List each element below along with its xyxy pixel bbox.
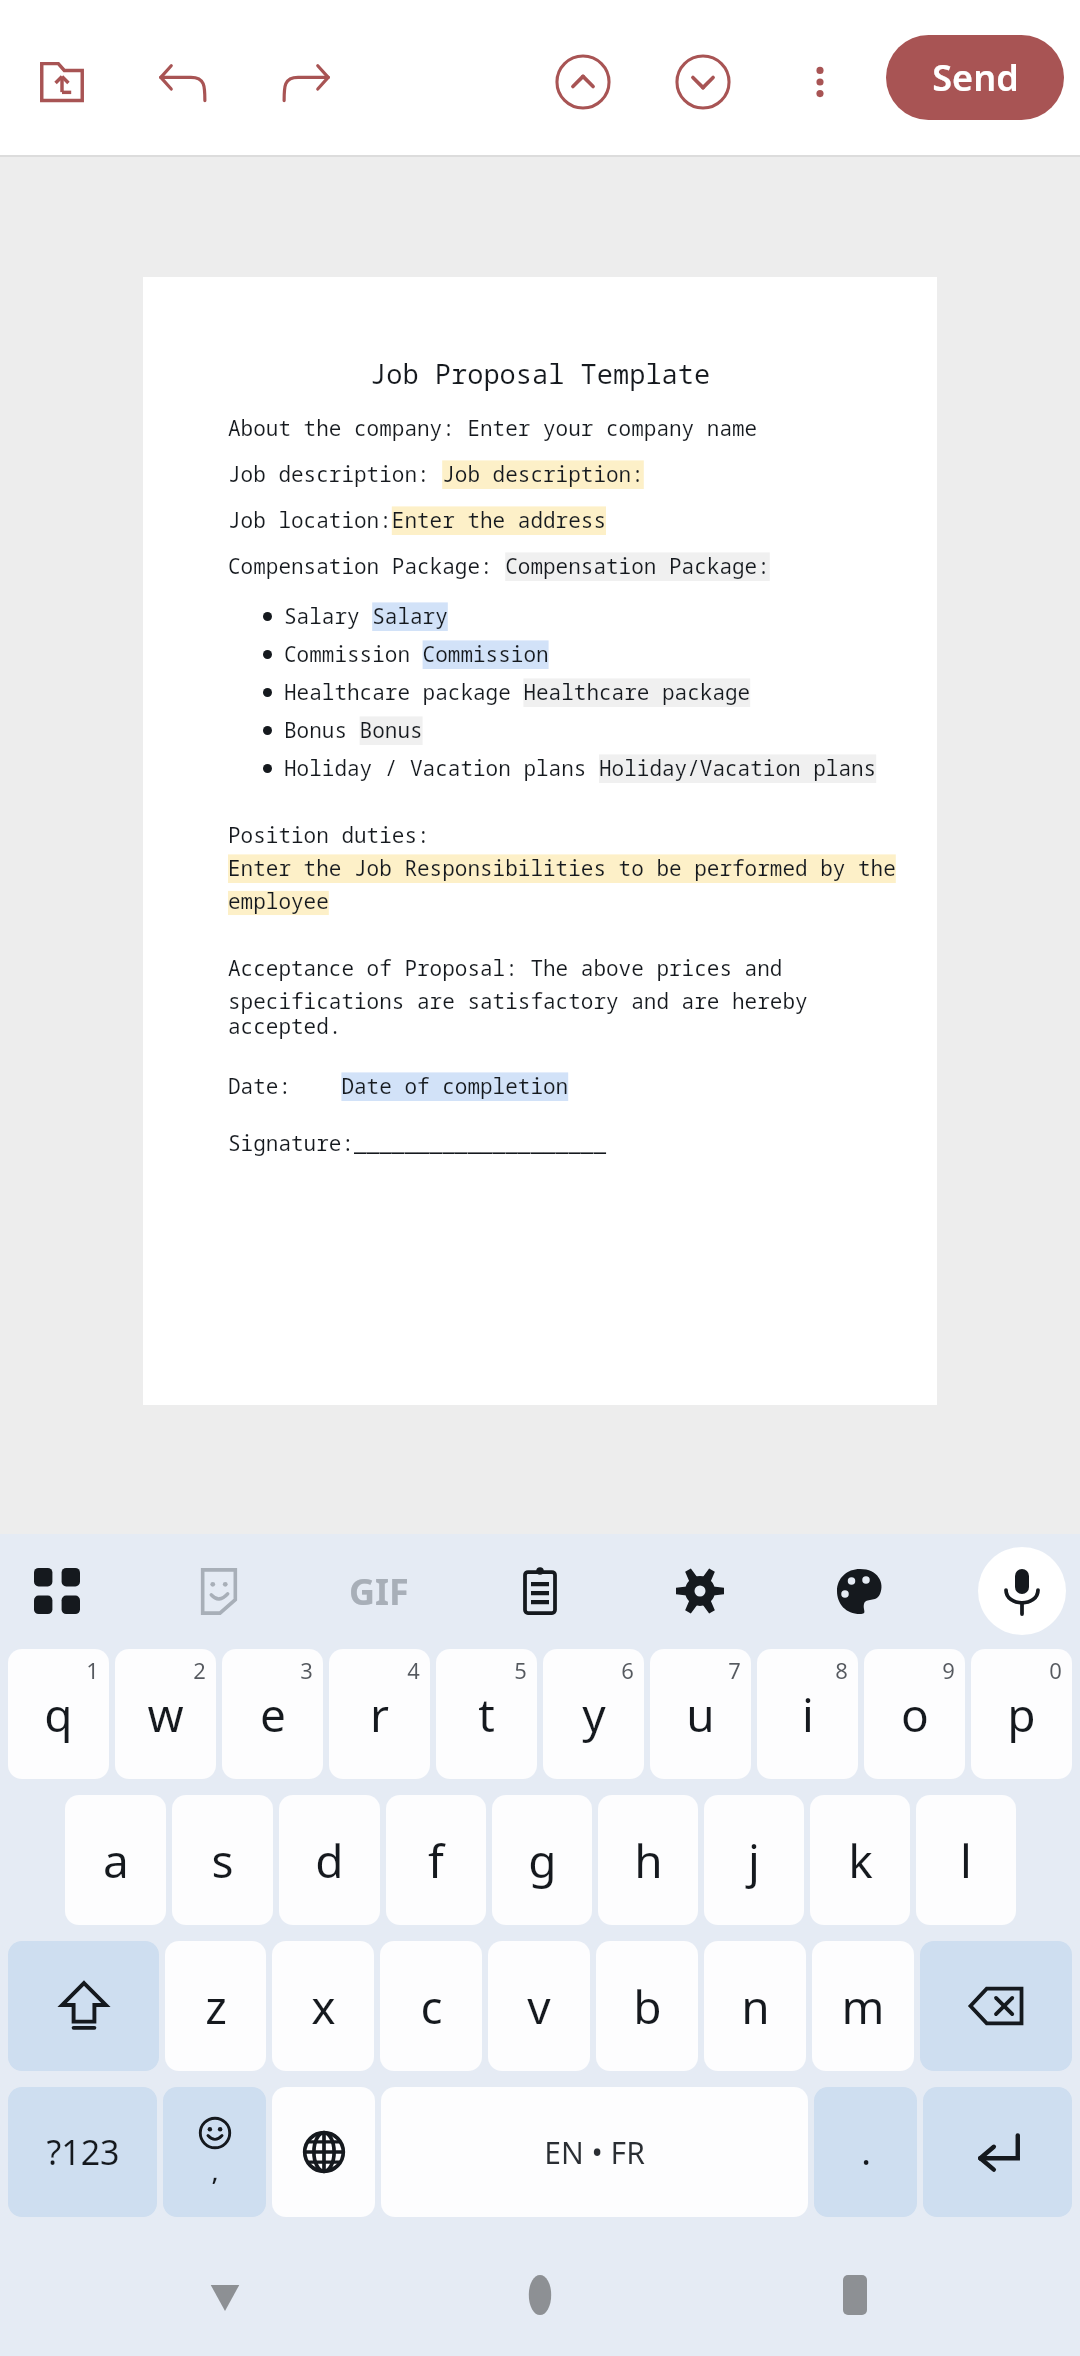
staticText: Date: Date of completion — [228, 1072, 569, 1101]
button[interactable]: s — [172, 1795, 273, 1925]
staticText: a — [103, 1829, 129, 1892]
button[interactable]: Back — [190, 2260, 260, 2330]
staticText: Send — [932, 53, 1019, 102]
staticText: t — [478, 1683, 495, 1746]
button[interactable]: d — [279, 1795, 380, 1925]
staticText: specifications are satisfactory and are … — [228, 987, 917, 1040]
button[interactable]: u — [650, 1649, 751, 1779]
staticText: About the company: Enter your company na… — [228, 414, 758, 443]
button[interactable]: i — [757, 1649, 858, 1779]
button[interactable]: y — [543, 1649, 644, 1779]
button[interactable]: Keyboard tool — [17, 1551, 97, 1631]
button[interactable]: w — [115, 1649, 216, 1779]
staticText: w — [147, 1683, 184, 1746]
button[interactable]: x — [272, 1941, 374, 2071]
button[interactable]: Previous — [553, 52, 613, 112]
staticText: , — [211, 2153, 219, 2188]
button[interactable]: More options — [790, 52, 850, 112]
button[interactable]: h — [598, 1795, 698, 1925]
button[interactable]: e — [222, 1649, 323, 1779]
button[interactable]: n — [704, 1941, 806, 2071]
staticText: u — [686, 1683, 715, 1746]
button[interactable]: q — [8, 1649, 109, 1779]
button[interactable]: Backspace — [920, 1941, 1072, 2071]
staticText: c — [420, 1975, 443, 2038]
button[interactable]: l — [916, 1795, 1016, 1925]
button[interactable]: Redo — [273, 50, 337, 114]
staticText: EN • FR — [544, 2132, 645, 2173]
button[interactable]: Recent apps — [820, 2260, 890, 2330]
staticText: Signature:____________________ — [228, 1129, 606, 1158]
button[interactable]: EN • FR — [381, 2087, 808, 2217]
button[interactable]: r — [329, 1649, 430, 1779]
staticText: ?123 — [46, 2129, 120, 2175]
staticText: Healthcare package Healthcare package — [284, 678, 751, 707]
button[interactable]: Shift — [8, 1941, 159, 2071]
button[interactable]: c — [380, 1941, 482, 2071]
button[interactable]: m — [812, 1941, 914, 2071]
staticText: . — [861, 2129, 871, 2175]
staticText: 6 — [621, 1655, 634, 1685]
staticText: Job Proposal Template — [370, 355, 711, 392]
button[interactable]: a — [65, 1795, 166, 1925]
button[interactable]: p — [971, 1649, 1072, 1779]
button[interactable]: k — [810, 1795, 910, 1925]
staticText: Enter the Job Responsibilities to be per… — [228, 854, 896, 883]
staticText: 5 — [514, 1655, 527, 1685]
staticText: g — [528, 1829, 557, 1892]
staticText: 8 — [835, 1655, 848, 1685]
staticText: p — [1007, 1683, 1036, 1746]
button[interactable]: Next — [673, 52, 733, 112]
button[interactable]: Send — [886, 35, 1064, 120]
button[interactable]: Home — [505, 2260, 575, 2330]
staticText: 3 — [300, 1655, 313, 1685]
button[interactable]: Keyboard tool — [660, 1551, 740, 1631]
staticText: GIF — [349, 1567, 409, 1616]
staticText: Job description: Job description: — [228, 460, 644, 489]
button[interactable]: f — [386, 1795, 486, 1925]
button[interactable]: ?123 — [8, 2087, 157, 2217]
staticText: 9 — [942, 1655, 955, 1685]
staticText: k — [848, 1829, 873, 1892]
button[interactable]: Keyboard tool — [820, 1551, 900, 1631]
staticText: i — [802, 1683, 814, 1746]
staticText: 4 — [407, 1655, 420, 1685]
button[interactable]: t — [436, 1649, 537, 1779]
button[interactable]: z — [165, 1941, 266, 2071]
staticText: f — [428, 1829, 444, 1892]
staticText: Job location:Enter the address — [228, 506, 606, 535]
button[interactable]: j — [704, 1795, 804, 1925]
staticText: Bonus Bonus — [284, 716, 436, 745]
button[interactable]: g — [492, 1795, 592, 1925]
staticText: Acceptance of Proposal: The above prices… — [228, 954, 783, 983]
staticText: Holiday / Vacation plans Holiday/Vacatio… — [284, 754, 877, 783]
button[interactable]: Change language — [272, 2087, 375, 2217]
button[interactable]: o — [864, 1649, 965, 1779]
staticText: v — [527, 1975, 551, 2038]
button[interactable]: v — [488, 1941, 590, 2071]
button[interactable]: b — [596, 1941, 698, 2071]
staticText: Salary Salary — [284, 602, 448, 631]
button[interactable]: Open file — [30, 50, 94, 114]
button[interactable]: Keyboard tool — [500, 1551, 580, 1631]
staticText: Commission Commission — [284, 640, 549, 669]
staticText: n — [741, 1975, 770, 2038]
staticText: y — [582, 1683, 606, 1746]
staticText: 2 — [193, 1655, 206, 1685]
button[interactable]: Keyboard tool — [339, 1551, 419, 1631]
button[interactable]: Undo — [152, 50, 216, 114]
staticText: Position duties: — [228, 821, 430, 850]
button[interactable]: Voice input — [978, 1547, 1066, 1635]
staticText: r — [370, 1683, 389, 1746]
staticText: 0 — [1049, 1655, 1062, 1685]
button[interactable]: Enter — [923, 2087, 1072, 2217]
staticText: Compensation Package: Compensation Packa… — [228, 552, 770, 581]
staticText: s — [211, 1829, 234, 1892]
staticText: 7 — [728, 1655, 741, 1685]
button[interactable]: . — [814, 2087, 917, 2217]
staticText: d — [315, 1829, 344, 1892]
button[interactable]: Emoji — [163, 2087, 266, 2217]
button[interactable]: Keyboard tool — [179, 1551, 259, 1631]
staticText: h — [634, 1829, 663, 1892]
staticText: q — [44, 1683, 73, 1746]
